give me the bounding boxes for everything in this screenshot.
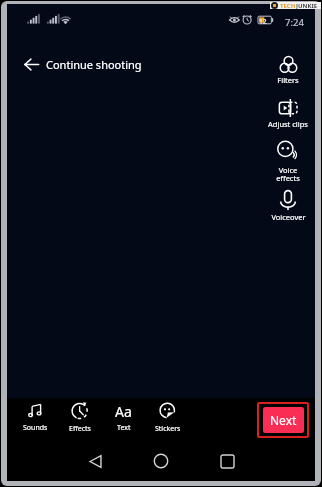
staticText: Adjust clips bbox=[268, 119, 308, 129]
staticText: 12 bbox=[259, 17, 267, 26]
button[interactable]: Effects bbox=[62, 402, 97, 434]
button[interactable]: Stickers bbox=[150, 402, 185, 434]
staticText: 7:24 bbox=[285, 16, 304, 29]
button[interactable]: Back bbox=[78, 444, 112, 478]
staticText: Voice effects bbox=[276, 165, 300, 183]
staticText: Effects bbox=[69, 424, 91, 434]
button[interactable]: Filters bbox=[261, 56, 315, 85]
staticText: Voiceover bbox=[271, 212, 306, 222]
staticText: Sounds bbox=[23, 423, 48, 433]
button[interactable]: Adjust clips bbox=[261, 99, 315, 129]
button[interactable]: Recents bbox=[210, 444, 244, 478]
staticText: Filters bbox=[277, 75, 299, 85]
button[interactable]: Voiceover bbox=[261, 190, 315, 222]
button[interactable]: Voice effects bbox=[261, 141, 315, 183]
staticText: JUNKIE bbox=[296, 2, 318, 9]
button[interactable]: Home bbox=[144, 444, 178, 478]
staticText: Continue shooting bbox=[46, 57, 142, 72]
button[interactable]: Sounds bbox=[18, 402, 53, 433]
staticText: Stickers bbox=[155, 424, 181, 434]
staticText: Text bbox=[117, 423, 131, 433]
button[interactable]: Back bbox=[19, 52, 43, 76]
staticText: Next bbox=[270, 412, 297, 428]
staticText: TECH bbox=[280, 2, 296, 9]
staticText: Aa bbox=[115, 402, 132, 419]
button[interactable]: Next bbox=[263, 407, 304, 433]
button[interactable]: Aa bbox=[106, 402, 141, 433]
